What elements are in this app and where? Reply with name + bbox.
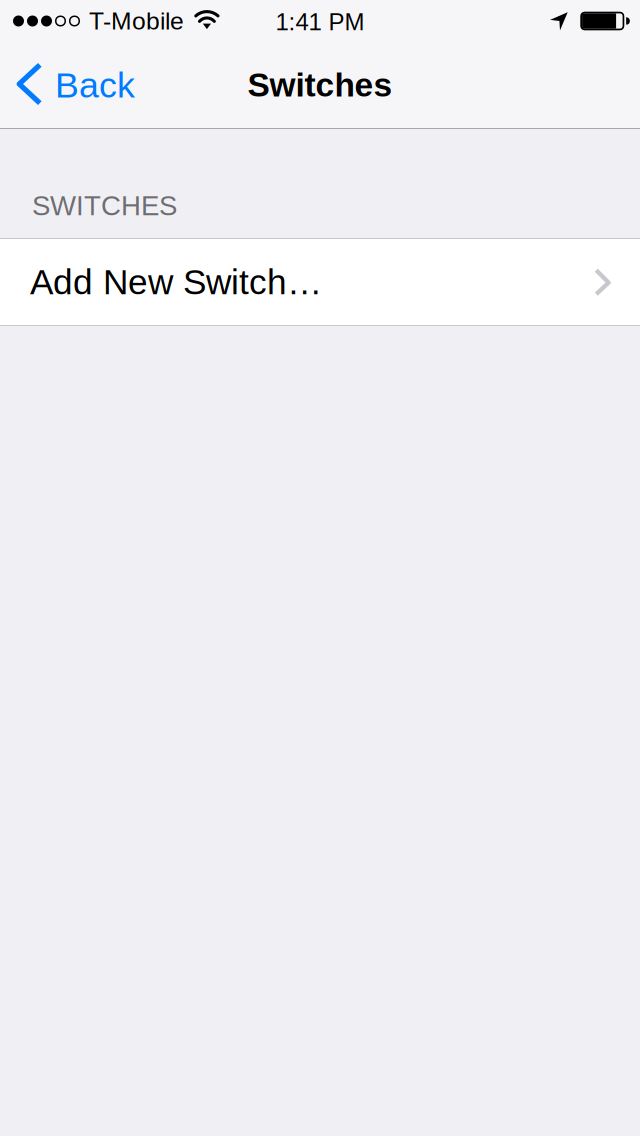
button[interactable]: Back	[0, 40, 151, 128]
button[interactable]: Add New Switch…	[0, 239, 640, 325]
staticText: T-Mobile	[89, 7, 184, 35]
staticText: 1:41 PM	[275, 9, 364, 35]
staticText: SWITCHES	[32, 190, 177, 221]
staticText: Back	[55, 65, 135, 105]
staticText: Add New Switch…	[30, 262, 322, 302]
staticText: Switches	[247, 66, 392, 104]
